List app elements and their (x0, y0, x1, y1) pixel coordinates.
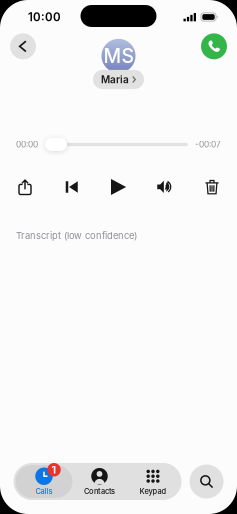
button[interactable]: Previous (55, 176, 89, 198)
button[interactable]: Contacts (72, 465, 126, 498)
button[interactable]: Speaker (148, 176, 182, 198)
staticText: 1 (51, 463, 56, 476)
staticText: 00:00 (16, 139, 38, 149)
button[interactable]: Maria (93, 70, 144, 89)
staticText: Maria (101, 73, 129, 86)
staticText: -00:07 (195, 139, 221, 149)
button[interactable]: Play (101, 176, 135, 198)
button[interactable]: 1 (15, 465, 72, 498)
staticText: Calls (35, 487, 52, 496)
button[interactable]: Delete (195, 176, 229, 198)
button[interactable]: Share (8, 176, 42, 198)
staticText: Transcript (low confidence) (16, 230, 137, 241)
button[interactable]: Keypad (126, 465, 179, 498)
staticText: Keypad (139, 487, 166, 496)
staticText: Contacts (84, 487, 115, 496)
button[interactable]: Call (201, 33, 227, 59)
button[interactable]: Search (189, 464, 223, 498)
button[interactable]: Back (10, 33, 36, 59)
staticText: MS (103, 44, 133, 68)
staticText: 10:00 (28, 10, 61, 24)
